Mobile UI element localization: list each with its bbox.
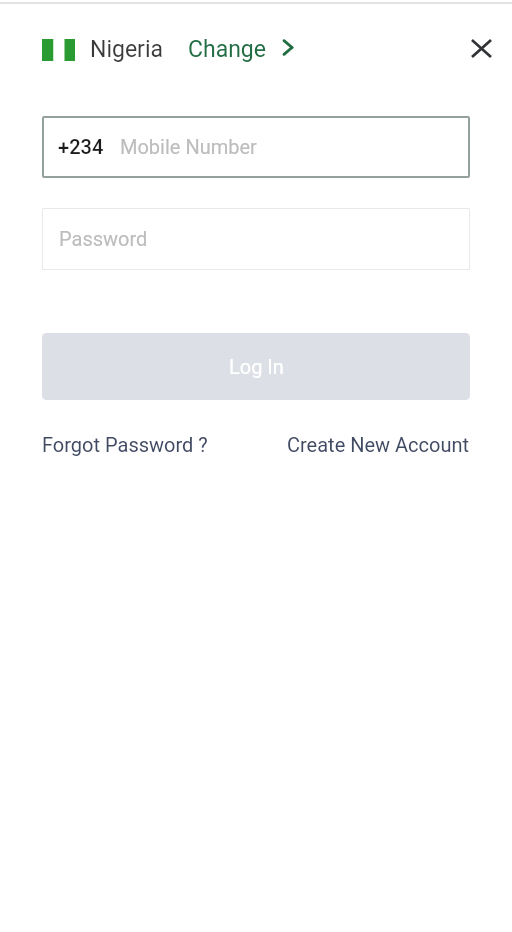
staticText: +234 <box>58 135 104 158</box>
button[interactable]: Forgot Password ? <box>42 427 208 462</box>
button[interactable]: +234 <box>42 116 470 178</box>
staticText: Nigeria <box>90 36 164 63</box>
button[interactable]: Close <box>459 26 503 70</box>
staticText: Mobile Number <box>120 135 257 158</box>
button[interactable]: Nigeria <box>42 36 294 63</box>
staticText: Forgot Password ? <box>42 433 208 456</box>
staticText: Password <box>59 227 148 250</box>
staticText: Change <box>188 36 266 63</box>
button[interactable]: Log In <box>42 333 470 400</box>
staticText: Create New Account <box>287 433 470 456</box>
button[interactable]: Password <box>42 208 470 270</box>
staticText: Log In <box>229 355 284 378</box>
button[interactable]: Create New Account <box>287 427 470 462</box>
